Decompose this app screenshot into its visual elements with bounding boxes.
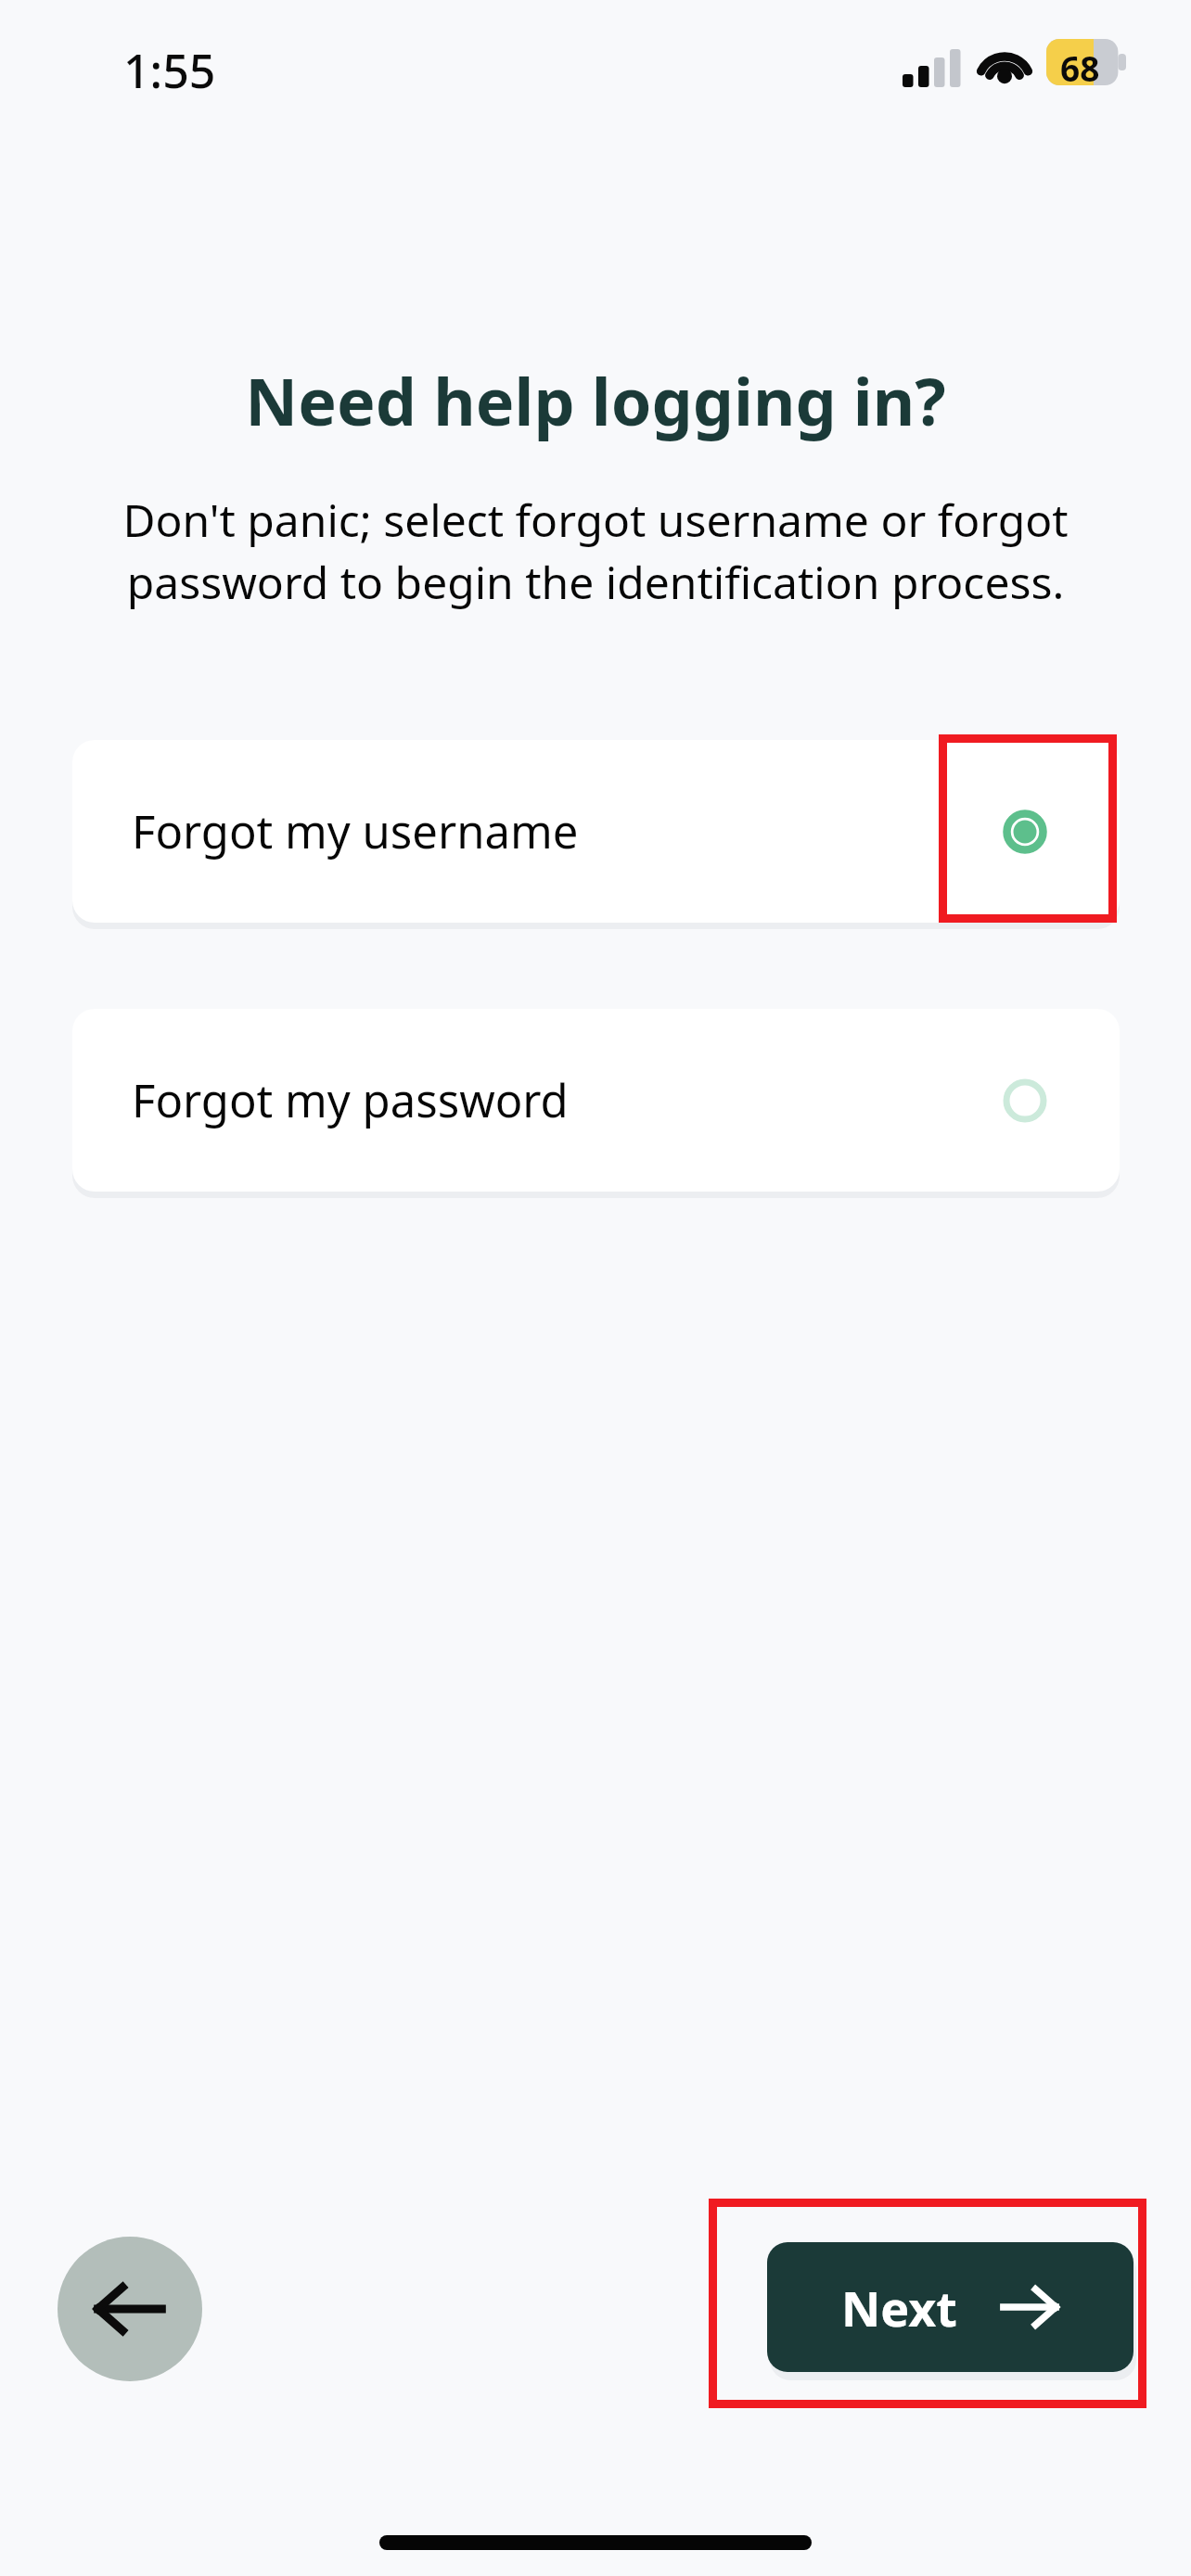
button[interactable]: Back — [58, 2237, 202, 2381]
staticText: 1:55 — [123, 39, 216, 102]
staticText: Next — [841, 2275, 957, 2340]
staticText: Don't panic; select forgot username or f… — [85, 490, 1106, 612]
staticText: Need help logging in? — [245, 356, 946, 444]
staticText: Forgot my username — [132, 800, 579, 862]
button[interactable]: Forgot my password — [72, 1009, 1120, 1192]
button[interactable]: Next — [767, 2242, 1133, 2372]
staticText: 68 — [1060, 45, 1100, 91]
staticText: Forgot my password — [132, 1069, 569, 1131]
button[interactable]: Forgot my username — [72, 740, 1120, 923]
